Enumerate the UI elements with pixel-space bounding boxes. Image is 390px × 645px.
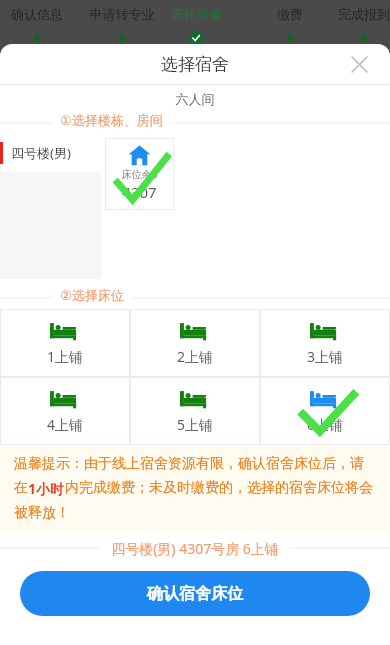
staticText: 选择宿舍	[152, 6, 240, 22]
button[interactable]: 四号楼(男)	[0, 134, 101, 172]
button[interactable]: 4上铺	[0, 377, 130, 445]
staticText: 1上铺	[0, 347, 130, 366]
staticText: 4上铺	[0, 415, 130, 434]
button[interactable]: 申请转专业	[78, 6, 166, 22]
staticText: 选择宿舍	[0, 54, 390, 75]
staticText: 申请转专业	[78, 6, 166, 22]
button[interactable]: 5上铺	[130, 377, 260, 445]
staticText: 床位余6	[105, 167, 174, 181]
staticText: 4307	[105, 182, 174, 202]
button[interactable]: 1上铺	[0, 309, 130, 377]
button[interactable]: 缴费	[246, 6, 334, 22]
button[interactable]: 确认宿舍床位	[20, 571, 370, 616]
button[interactable]: 完成报到	[320, 6, 390, 22]
staticText: ①选择楼栋、房间	[60, 112, 163, 128]
button[interactable]: 确认信息	[0, 6, 81, 22]
staticText: 确认信息	[0, 6, 81, 22]
staticText: 2上铺	[130, 347, 260, 366]
staticText: 四号楼(男) 4307号房 6上铺	[111, 539, 279, 558]
button[interactable]: 6上铺	[260, 377, 390, 445]
staticText: 内完成缴费；未及时缴费的，选择的宿舍床位将会	[65, 479, 373, 497]
staticText: ②选择床位	[60, 287, 124, 303]
staticText: 完成报到	[320, 6, 390, 22]
button[interactable]: 3上铺	[260, 309, 390, 377]
staticText: 四号楼(男)	[11, 144, 71, 162]
staticText: 六人间	[0, 91, 390, 107]
button[interactable]: 关闭	[342, 47, 376, 81]
staticText: 6上铺	[260, 415, 390, 434]
staticText: 1小时	[28, 479, 65, 498]
staticText: 确认宿舍床位	[147, 584, 243, 604]
button[interactable]: 2上铺	[130, 309, 260, 377]
staticText: 缴费	[246, 6, 334, 22]
staticText: 5上铺	[130, 415, 260, 434]
staticText: 在	[14, 479, 28, 497]
staticText: 3上铺	[260, 347, 390, 366]
button[interactable]: 选择宿舍	[152, 6, 240, 22]
staticText: 被释放！	[14, 504, 70, 522]
button[interactable]: 床位余6	[105, 138, 174, 210]
staticText: 温馨提示：由于线上宿舍资源有限，确认宿舍床位后，请	[14, 455, 364, 473]
